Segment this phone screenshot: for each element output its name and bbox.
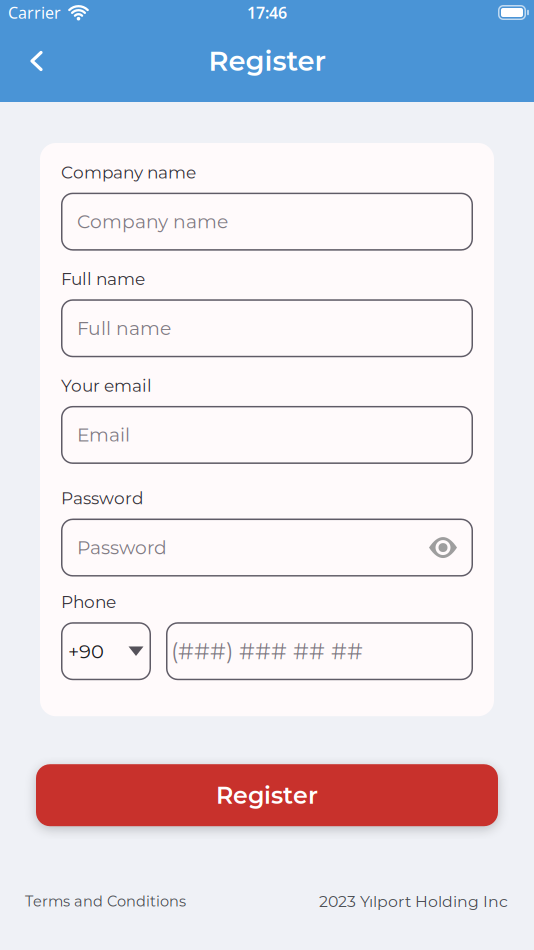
staticText: Password	[77, 536, 167, 559]
staticText: Company name	[77, 210, 228, 233]
staticText: +90	[68, 639, 104, 663]
staticText: Company name	[61, 162, 196, 183]
staticText: Terms and Conditions	[25, 893, 186, 910]
staticText: Your email	[61, 375, 152, 396]
staticText: (###) ### ## ##	[171, 637, 363, 665]
staticText: Register	[208, 44, 325, 78]
staticText: Phone	[61, 592, 116, 612]
staticText: Password	[61, 488, 143, 508]
button[interactable]: Back	[0, 28, 61, 94]
button[interactable]: Country code +90	[61, 622, 151, 680]
staticText: Carrier	[8, 2, 61, 23]
button[interactable]: Terms and Conditions	[25, 893, 186, 910]
button[interactable]: Register	[0, 764, 534, 826]
staticText: Register	[216, 781, 318, 810]
staticText: Email	[77, 423, 130, 446]
staticText: Full name	[77, 317, 171, 340]
staticText: 17:46	[247, 2, 287, 23]
button[interactable]: Show password	[429, 538, 457, 558]
staticText: 2023 Yılport Holding Inc	[319, 892, 508, 911]
staticText: Full name	[61, 269, 145, 289]
